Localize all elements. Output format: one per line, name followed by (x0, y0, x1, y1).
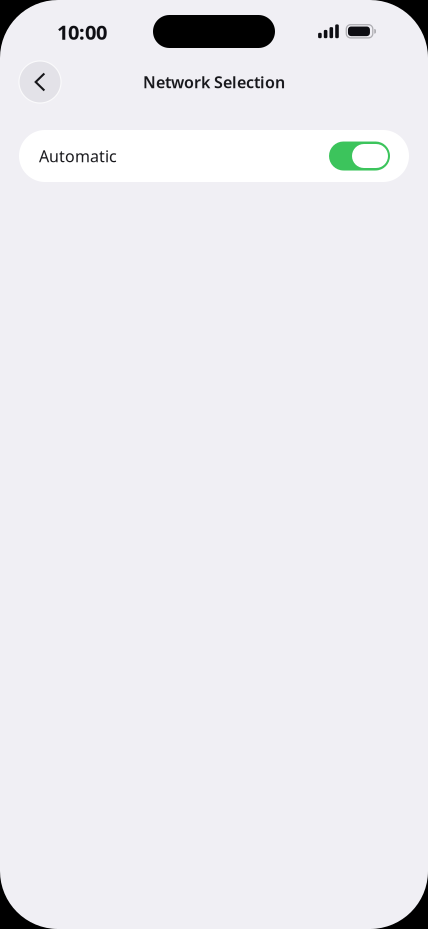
staticText: 10:00 (57, 19, 107, 45)
staticText: Network Selection (143, 71, 285, 93)
button[interactable]: Automatic network selection, on (329, 141, 390, 170)
staticText: Automatic (39, 145, 117, 167)
button[interactable]: Automatic (19, 130, 409, 182)
button[interactable]: Back (19, 61, 61, 103)
